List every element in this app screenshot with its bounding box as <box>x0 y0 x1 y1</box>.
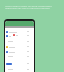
button[interactable] <box>5 40 34 43</box>
button[interactable] <box>5 30 34 33</box>
button[interactable] <box>5 45 34 48</box>
button[interactable] <box>5 55 34 58</box>
button[interactable] <box>5 50 34 53</box>
staticText: Lorem ipsum dolor sit amet consectetur a… <box>5 4 59 10</box>
button[interactable] <box>6 63 12 65</box>
button[interactable] <box>5 68 34 71</box>
button[interactable] <box>5 34 34 37</box>
